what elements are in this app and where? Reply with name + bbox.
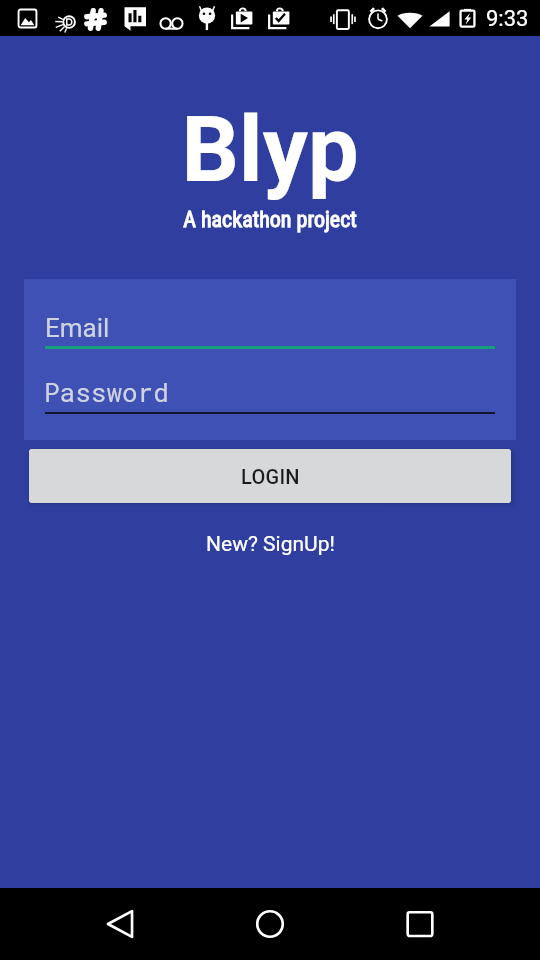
button[interactable]: Password: [44, 354, 496, 416]
staticText: Email: [45, 313, 110, 343]
button[interactable]: Back: [80, 888, 160, 960]
staticText: Password: [44, 375, 169, 409]
button[interactable]: Email: [44, 289, 496, 351]
button[interactable]: New? SignUp!: [196, 524, 345, 565]
staticText: Blyp: [181, 98, 359, 203]
staticText: A hackathon project: [183, 207, 357, 233]
staticText: 9:33: [486, 6, 529, 32]
staticText: New? SignUp!: [206, 532, 335, 557]
button[interactable]: Recent apps: [380, 888, 460, 960]
staticText: LOGIN: [241, 465, 300, 488]
button[interactable]: Home: [230, 888, 310, 960]
button[interactable]: LOGIN: [29, 449, 511, 503]
